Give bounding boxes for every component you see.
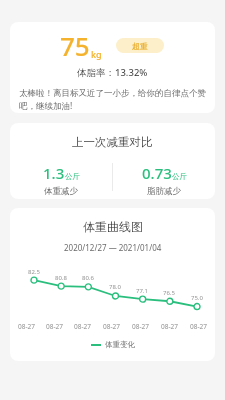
button[interactable]: 0.73: [113, 163, 215, 197]
staticText: 体重变化: [105, 340, 135, 349]
staticText: 公斤: [65, 172, 80, 181]
staticText: 脂肪减少: [147, 186, 181, 197]
button[interactable]: 体重曲线图: [10, 208, 215, 361]
staticText: 2020/12/27 — 2021/01/04: [64, 242, 162, 253]
button[interactable]: 75: [10, 22, 215, 113]
staticText: 公斤: [172, 172, 187, 181]
staticText: 80.6: [82, 274, 94, 282]
staticText: 0.73: [142, 163, 172, 183]
staticText: 76.5: [163, 289, 175, 297]
staticText: 超重: [132, 41, 148, 51]
button[interactable]: 上一次减重对比: [10, 123, 215, 199]
staticText: 08-27: [103, 322, 120, 331]
staticText: 08-27: [190, 322, 207, 331]
staticText: 08-27: [18, 322, 35, 331]
staticText: 77.1: [136, 287, 148, 295]
staticText: 80.8: [55, 274, 67, 282]
staticText: 82.5: [28, 268, 40, 276]
staticText: 08-27: [161, 322, 178, 331]
button[interactable]: 超重: [116, 38, 164, 53]
staticText: 08-27: [46, 322, 63, 331]
staticText: 75.0: [191, 294, 203, 302]
staticText: 75: [60, 28, 90, 63]
staticText: 08-27: [74, 322, 91, 331]
button[interactable]: 1.3: [10, 163, 112, 197]
staticText: 78.0: [109, 283, 121, 291]
staticText: 体重曲线图: [83, 219, 143, 234]
staticText: 体重减少: [44, 186, 78, 197]
staticText: 上一次减重对比: [72, 135, 153, 149]
staticText: 08-27: [132, 322, 149, 331]
staticText: 体脂率：13.32%: [77, 66, 148, 79]
staticText: 太棒啦！离目标又近了一小步，给你的自律点个赞吧，继续加油!: [19, 88, 206, 112]
staticText: kg: [91, 48, 102, 60]
staticText: 1.3: [43, 163, 65, 183]
